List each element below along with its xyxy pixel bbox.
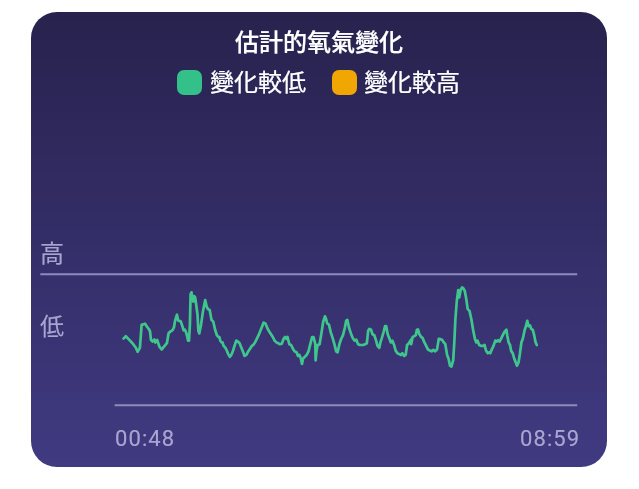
- button[interactable]: 估計的氧氣變化圖表: [31, 12, 607, 467]
- staticText: 變化較高: [364, 63, 460, 98]
- button[interactable]: 變化較低: [177, 70, 306, 105]
- staticText: 高: [40, 234, 64, 269]
- staticText: 低: [40, 307, 64, 342]
- staticText: 變化較低: [210, 63, 306, 98]
- staticText: 估計的氧氣變化: [235, 23, 403, 58]
- staticText: 00:48: [115, 426, 176, 452]
- staticText: 08:59: [520, 426, 581, 452]
- button[interactable]: 變化較高: [332, 70, 460, 105]
